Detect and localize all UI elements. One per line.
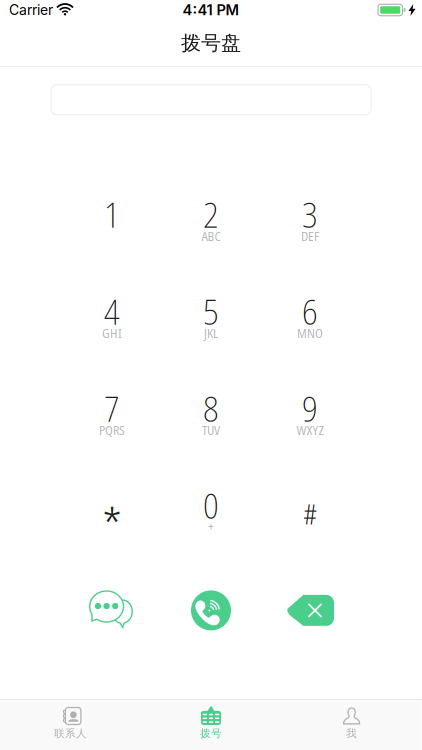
staticText: 2 [203,191,219,238]
staticText: DEF [301,228,319,245]
button[interactable]: # [260,480,359,542]
staticText: 1 [104,191,120,238]
button[interactable]: Call [161,582,260,638]
button[interactable]: 6 [260,286,359,348]
button[interactable]: 5 [161,286,260,348]
staticText: 4 [104,288,120,335]
staticText: 7 [104,385,120,432]
staticText: 联系人 [54,727,87,740]
staticText: 8 [203,385,219,432]
button[interactable]: 我 [281,701,422,749]
staticText: 拨号盘 [181,31,241,55]
staticText: 9 [302,385,318,432]
staticText: # [303,496,316,532]
staticText: 3 [302,191,318,238]
staticText: ABC [201,228,220,245]
staticText: Carrier [9,1,53,18]
button[interactable]: 3 [260,189,359,251]
button[interactable]: 2 [161,189,260,251]
button[interactable]: 9 [260,383,359,445]
staticText: 5 [203,288,219,335]
staticText: 我 [346,727,357,740]
button[interactable]: 联系人 [0,701,141,749]
button[interactable]: 4 [62,286,161,348]
button[interactable]: Message [62,582,161,638]
button[interactable]: 1 [62,189,161,251]
button[interactable]: 7 [62,383,161,445]
staticText: MNO [297,325,323,342]
button[interactable]: 8 [161,383,260,445]
staticText: PQRS [99,422,125,439]
staticText: * [102,493,121,555]
button[interactable]: * [62,480,161,542]
staticText: TUV [202,422,220,439]
staticText: 6 [302,288,318,335]
staticText: 0 [203,482,219,529]
button[interactable]: 拨号 [141,701,281,749]
staticText: + [208,519,214,536]
button[interactable]: Delete [260,582,359,638]
staticText: 拨号 [200,727,222,740]
staticText: 4:41 PM [182,1,239,19]
button[interactable]: 0 [161,480,260,542]
staticText: GHI [102,325,122,342]
staticText: JKL [204,325,218,342]
staticText: WXYZ [296,422,323,439]
